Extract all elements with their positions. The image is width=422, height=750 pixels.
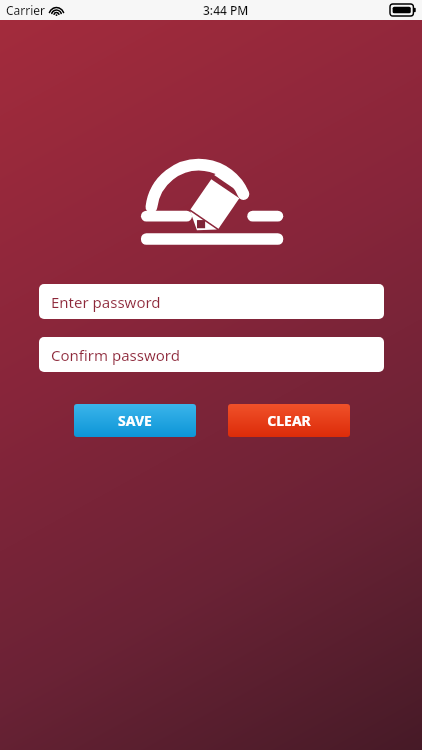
staticText: Confirm password [51,345,180,365]
staticText: CLEAR [267,411,311,430]
button[interactable]: Enter password [39,284,384,319]
staticText: Carrier [6,2,46,18]
staticText: 3:44 PM [203,2,249,18]
staticText: Enter password [51,292,161,312]
button[interactable]: CLEAR [228,404,350,437]
staticText: SAVE [118,411,152,430]
button[interactable]: Confirm password [39,337,384,372]
button[interactable]: SAVE [74,404,196,437]
